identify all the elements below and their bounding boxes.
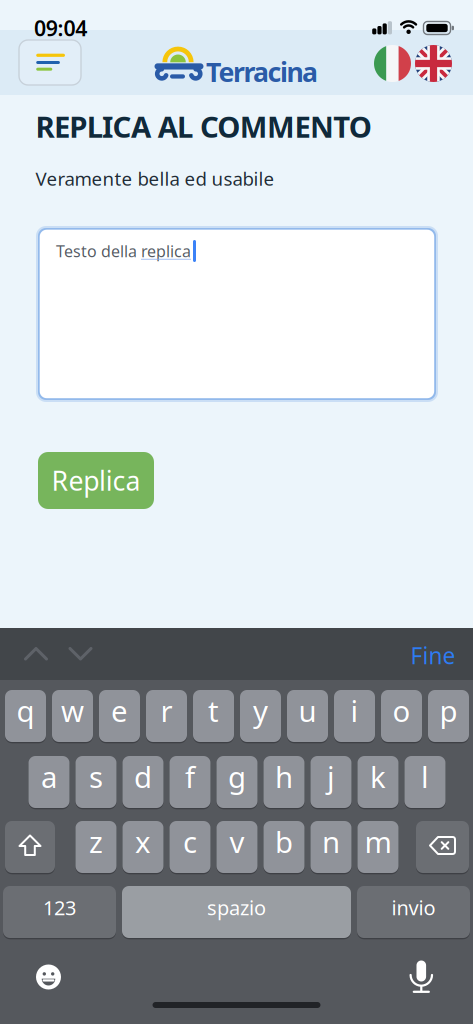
staticText: l (421, 757, 429, 796)
button[interactable]: a (28, 755, 69, 809)
button[interactable]: w (52, 689, 93, 743)
button[interactable]: i (334, 689, 375, 743)
staticText: m (364, 822, 391, 861)
staticText: Testo della replica (56, 240, 191, 262)
staticText: r (160, 691, 172, 730)
staticText: x (135, 822, 151, 861)
button[interactable]: p (428, 689, 469, 743)
staticText: spazio (207, 894, 266, 921)
button[interactable]: Cancella (416, 820, 469, 874)
staticText: p (439, 691, 457, 730)
button[interactable]: l (404, 755, 445, 809)
staticText: n (322, 822, 340, 861)
button[interactable]: Menu (19, 40, 81, 85)
button[interactable]: g (216, 755, 257, 809)
staticText: s (89, 757, 103, 796)
staticText: i (350, 691, 358, 730)
staticText: b (275, 822, 293, 861)
button[interactable]: Campo successivo (70, 648, 91, 660)
staticText: t (208, 691, 219, 730)
button[interactable]: t (193, 689, 234, 743)
button[interactable]: English (415, 45, 452, 82)
staticText: g (228, 757, 246, 796)
staticText: w (61, 691, 84, 730)
staticText: q (16, 691, 34, 730)
button[interactable]: Replica (38, 452, 154, 509)
button[interactable]: Dettatura (409, 960, 433, 993)
staticText: invio (391, 894, 435, 921)
staticText: a (41, 757, 57, 796)
button[interactable]: m (357, 820, 398, 874)
button[interactable]: y (240, 689, 281, 743)
button[interactable]: s (75, 755, 116, 809)
button[interactable]: Testo della replica (36, 226, 438, 402)
button[interactable]: c (169, 820, 210, 874)
button[interactable]: spazio (122, 885, 351, 939)
button[interactable]: 123 (3, 885, 116, 939)
button[interactable]: e (99, 689, 140, 743)
button[interactable]: q (5, 689, 46, 743)
button[interactable]: invio (357, 885, 470, 939)
button[interactable]: Italiano (374, 45, 411, 82)
staticText: Veramente bella ed usabile (35, 166, 274, 191)
button[interactable]: x (122, 820, 163, 874)
staticText: y (253, 691, 268, 730)
staticText: d (134, 757, 152, 796)
staticText: u (298, 691, 316, 730)
staticText: f (185, 757, 195, 796)
staticText: o (392, 691, 410, 730)
button[interactable]: o (381, 689, 422, 743)
staticText: 09:04 (34, 14, 87, 42)
button[interactable]: Fine (410, 640, 455, 671)
button[interactable]: h (263, 755, 304, 809)
staticText: REPLICA AL COMMENTO (35, 107, 372, 146)
button[interactable]: Campo precedente (25, 648, 46, 660)
button[interactable]: u (287, 689, 328, 743)
button[interactable]: Maiuscole (5, 820, 55, 874)
button[interactable]: z (75, 820, 116, 874)
button[interactable]: v (216, 820, 257, 874)
button[interactable]: j (310, 755, 351, 809)
button[interactable]: k (357, 755, 398, 809)
staticText: j (327, 757, 335, 796)
button[interactable]: d (122, 755, 163, 809)
button[interactable]: r (146, 689, 187, 743)
button[interactable]: n (310, 820, 351, 874)
staticText: k (370, 757, 386, 796)
button[interactable]: b (263, 820, 304, 874)
staticText: z (89, 822, 103, 861)
staticText: Terracina (206, 54, 318, 89)
staticText: Fine (410, 640, 455, 671)
staticText: v (229, 822, 244, 861)
button[interactable]: f (169, 755, 210, 809)
button[interactable]: Emoji (36, 964, 61, 989)
staticText: c (183, 822, 197, 861)
staticText: h (275, 757, 293, 796)
staticText: Replica (52, 463, 140, 498)
staticText: 123 (43, 894, 76, 921)
staticText: e (111, 691, 128, 730)
